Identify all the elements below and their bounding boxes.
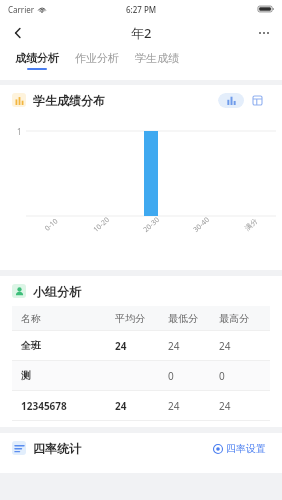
staticText: 全班 <box>21 339 115 352</box>
button[interactable]: 名称 <box>12 306 270 330</box>
staticText: 24 <box>219 339 270 353</box>
button[interactable]: Table view <box>244 93 270 108</box>
staticText: 30-40 <box>191 215 212 235</box>
staticText: 学生成绩 <box>135 51 179 65</box>
button[interactable]: 学生成绩 <box>133 51 181 70</box>
staticText: 小组分析 <box>33 284 81 299</box>
button[interactable]: 12345678 <box>12 391 270 420</box>
staticText: 成绩分析 <box>15 51 59 65</box>
staticText: 最低分 <box>168 312 219 325</box>
staticText: 最高分 <box>219 312 270 325</box>
button[interactable]: More options <box>246 18 282 48</box>
button[interactable]: 四率设置 <box>209 438 270 459</box>
staticText: 24 <box>115 399 168 413</box>
button[interactable]: Bar chart view <box>218 93 244 108</box>
staticText: 24 <box>219 399 270 413</box>
button[interactable]: 成绩分析 <box>13 51 61 70</box>
staticText: 12345678 <box>21 399 115 413</box>
staticText: 0 <box>168 369 219 383</box>
button[interactable]: 测 <box>12 361 270 390</box>
staticText: 6:27 PM <box>126 4 157 15</box>
staticText: 满分 <box>243 216 259 233</box>
staticText: 平均分 <box>115 312 168 325</box>
staticText: 名称 <box>21 312 115 325</box>
staticText: 1 <box>17 126 22 137</box>
staticText: 年2 <box>131 24 152 42</box>
button[interactable]: Back <box>0 18 36 48</box>
staticText: 10-20 <box>91 215 112 235</box>
staticText: 24 <box>168 399 219 413</box>
staticText: 作业分析 <box>75 51 119 65</box>
staticText: 20-30 <box>141 215 162 235</box>
button[interactable]: 全班 <box>12 331 270 360</box>
staticText: 学生成绩分布 <box>33 93 105 108</box>
staticText: 0-10 <box>43 216 60 234</box>
staticText: 0 <box>219 369 270 383</box>
staticText: 24 <box>168 339 219 353</box>
staticText: 四率统计 <box>33 441 81 456</box>
staticText: 测 <box>21 369 115 382</box>
button[interactable]: 作业分析 <box>73 51 121 70</box>
staticText: 四率设置 <box>226 442 266 455</box>
staticText: Carrier <box>8 4 35 15</box>
staticText: 24 <box>115 339 168 353</box>
